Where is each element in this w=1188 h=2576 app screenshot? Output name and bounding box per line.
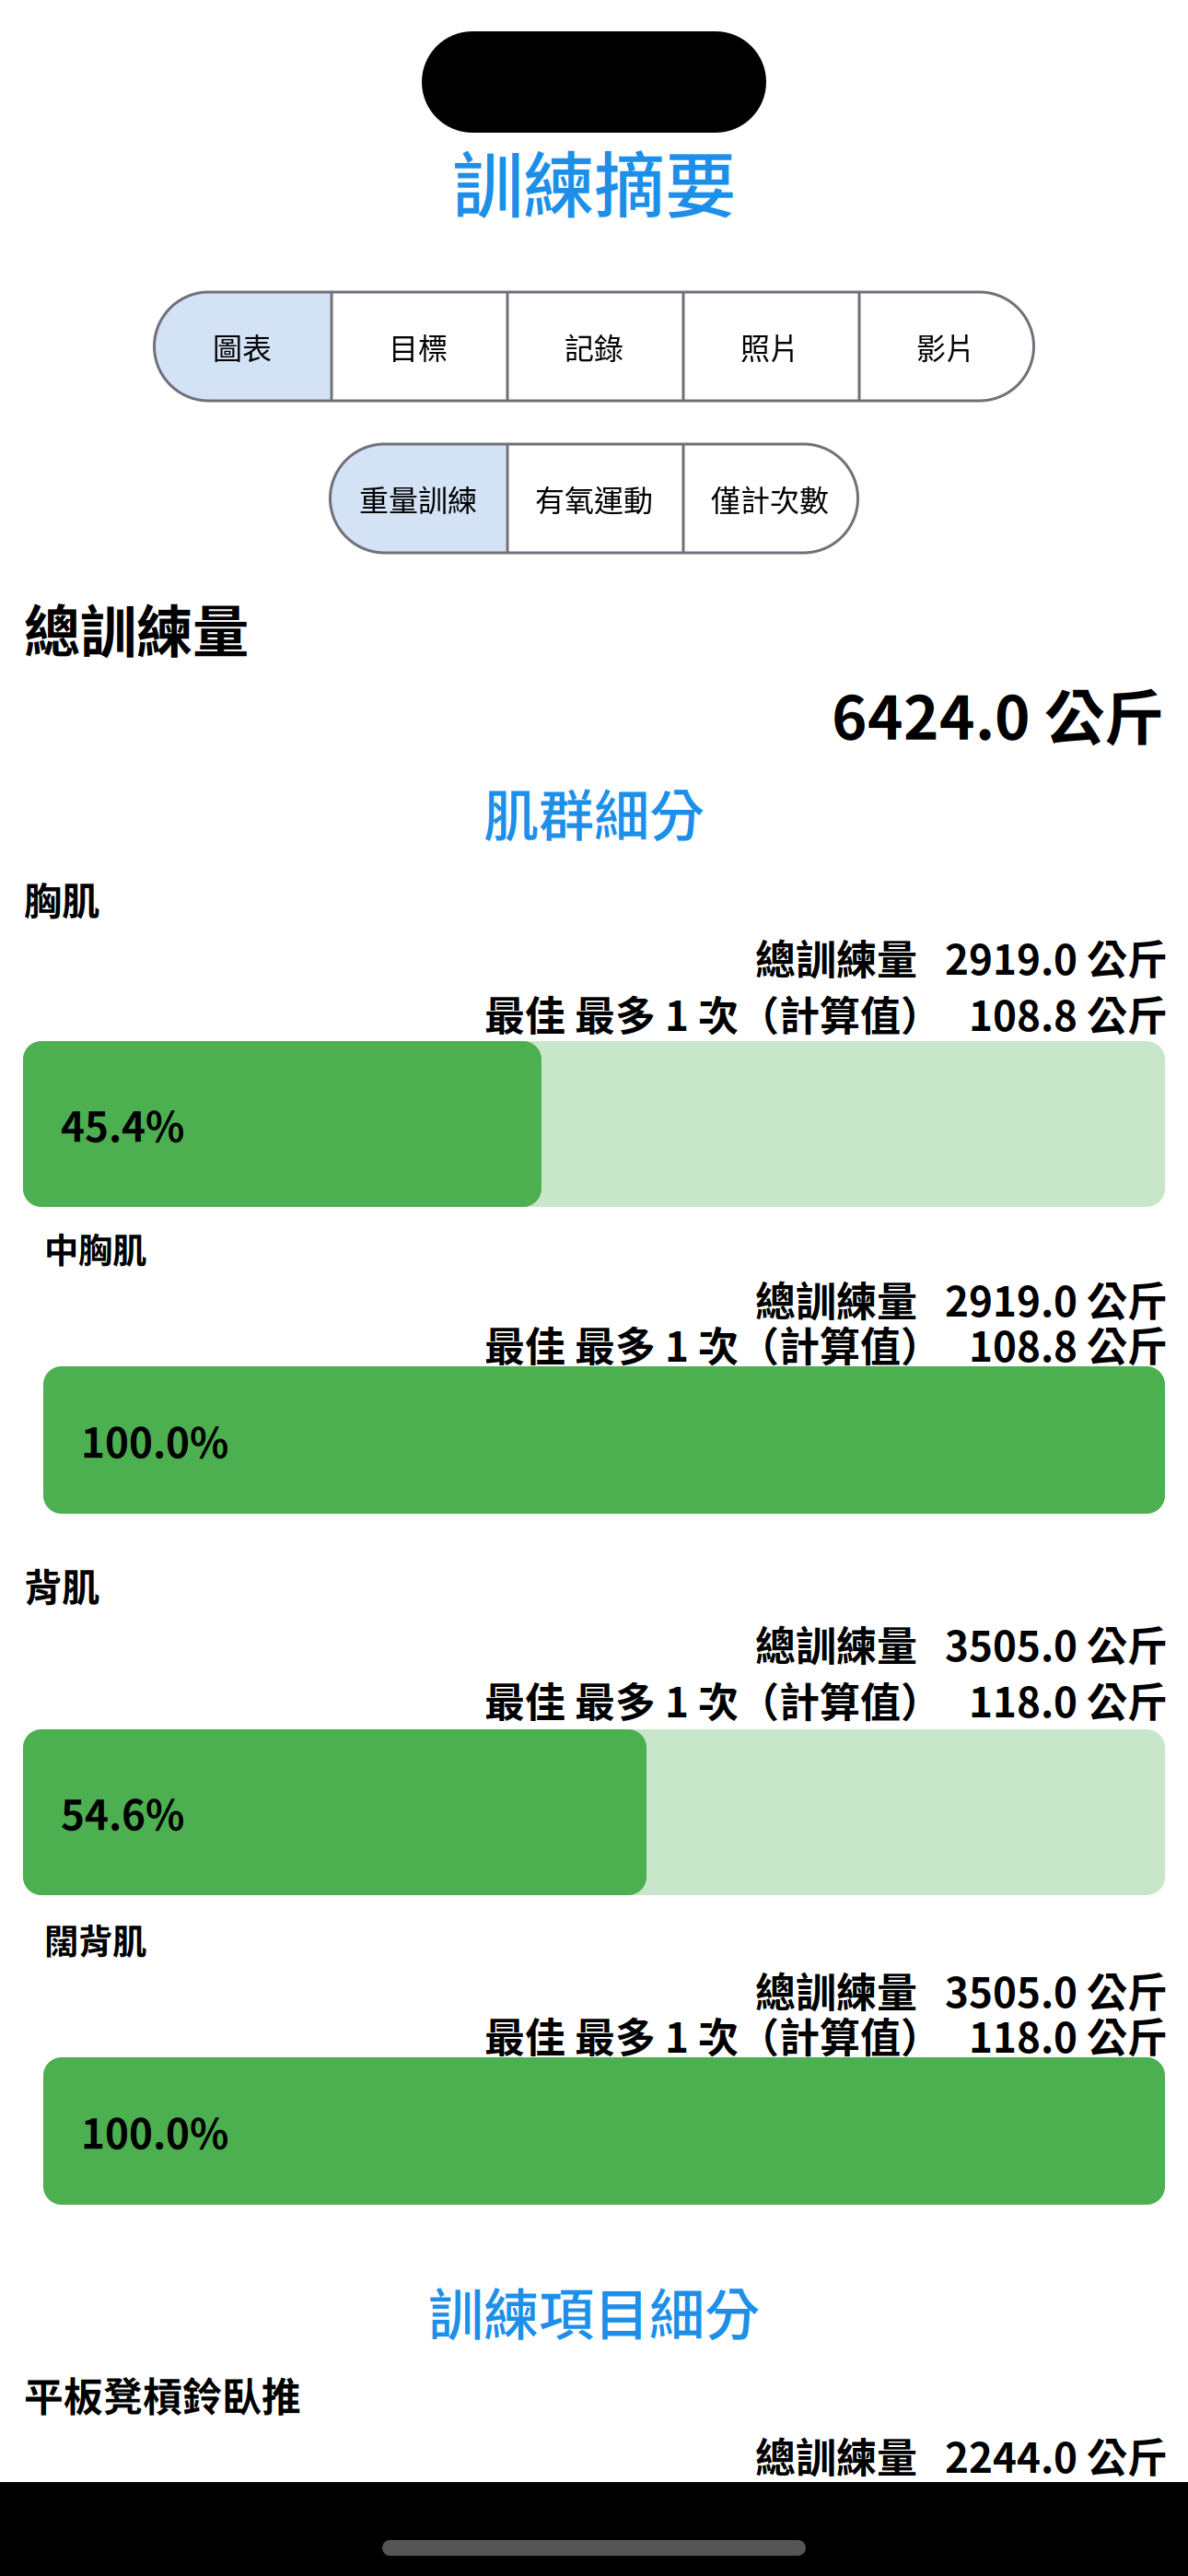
staticText: 背肌 <box>24 1557 99 1612</box>
staticText: 訓練項目細分 <box>428 2271 760 2351</box>
button[interactable]: 照片 <box>682 292 858 401</box>
staticText: 記錄 <box>565 325 623 368</box>
staticText: 總訓練量 2244.0 公斤 <box>755 2426 1168 2485</box>
staticText: 100.0% <box>81 2102 228 2160</box>
staticText: 總訓練量 2919.0 公斤 <box>755 1270 1168 1328</box>
staticText: 總訓練量 2919.0 公斤 <box>755 928 1168 986</box>
button[interactable]: 影片 <box>858 292 1034 401</box>
button[interactable]: 有氧運動 <box>506 444 682 553</box>
staticText: 肌群細分 <box>483 772 705 852</box>
staticText: 平板凳槓鈴臥推 <box>24 2366 301 2423</box>
staticText: 6424.0 公斤 <box>832 670 1164 757</box>
staticText: 有氧運動 <box>535 477 653 520</box>
staticText: 中胸肌 <box>44 1224 146 1273</box>
staticText: 目標 <box>389 325 448 368</box>
staticText: 圖表 <box>213 325 272 368</box>
staticText: 訓練摘要 <box>452 129 736 232</box>
staticText: 僅計次數 <box>711 477 829 520</box>
staticText: 100.0% <box>81 1411 228 1469</box>
button[interactable]: 記錄 <box>506 292 682 401</box>
staticText: 總訓練量 <box>24 587 249 669</box>
button[interactable]: 僅計次數 <box>682 444 858 553</box>
staticText: 最佳 最多 1 次（計算值） 118.0 公斤 <box>484 2006 1168 2064</box>
staticText: 重量訓練 <box>359 477 477 520</box>
button[interactable]: 圖表 <box>154 292 330 401</box>
staticText: 最佳 最多 1 次（計算值） 118.0 公斤 <box>484 1670 1168 1729</box>
staticText: 總訓練量 3505.0 公斤 <box>755 1961 1168 2019</box>
button[interactable]: 重量訓練 <box>330 444 506 553</box>
staticText: 54.6% <box>61 1783 184 1842</box>
staticText: 胸肌 <box>24 871 99 926</box>
staticText: 照片 <box>740 325 799 368</box>
staticText: 最佳 最多 1 次（計算值） 108.8 公斤 <box>484 1315 1168 1373</box>
staticText: 最佳 最多 1 次（計算值） 108.8 公斤 <box>484 984 1168 1043</box>
staticText: 影片 <box>916 325 975 368</box>
staticText: 闊背肌 <box>44 1914 146 1964</box>
staticText: 45.4% <box>61 1095 184 1153</box>
button[interactable]: 目標 <box>330 292 506 401</box>
staticText: 總訓練量 3505.0 公斤 <box>755 1614 1168 1673</box>
